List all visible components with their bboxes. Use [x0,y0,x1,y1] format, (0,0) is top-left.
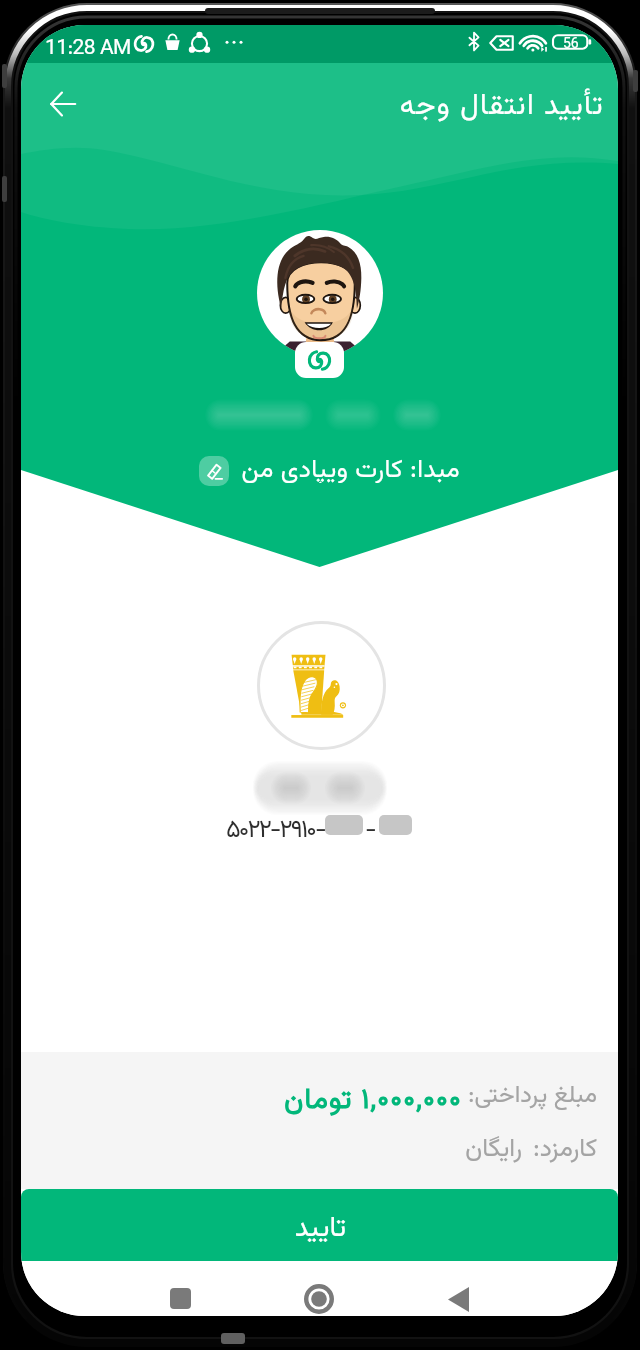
staticText: مبلغ پرداختی: [467,1077,597,1115]
staticText: تایید [294,1207,346,1251]
button[interactable]: تایید [21,1189,618,1261]
button[interactable]: Recent apps [152,1261,208,1316]
staticText: 56 [563,34,579,50]
staticText: - [365,811,377,839]
button[interactable]: Home [291,1261,347,1316]
button[interactable]: مبدا: کارت ویپادی من [199,455,460,487]
staticText: رایگان [465,1130,522,1169]
staticText: مبدا: کارت ویپادی من [241,451,460,483]
button[interactable]: Back [430,1261,486,1316]
staticText: ۱,۰۰۰,۰۰۰ تومان [284,1079,462,1123]
staticText: تأیید انتقال وجه [21,84,604,129]
staticText: ۵۰۲۲-۲۹۱۰- [226,811,325,839]
button[interactable]: Back [50,91,76,117]
staticText: 11:28 AM [45,32,131,65]
staticText: کارمزد: [532,1130,597,1169]
